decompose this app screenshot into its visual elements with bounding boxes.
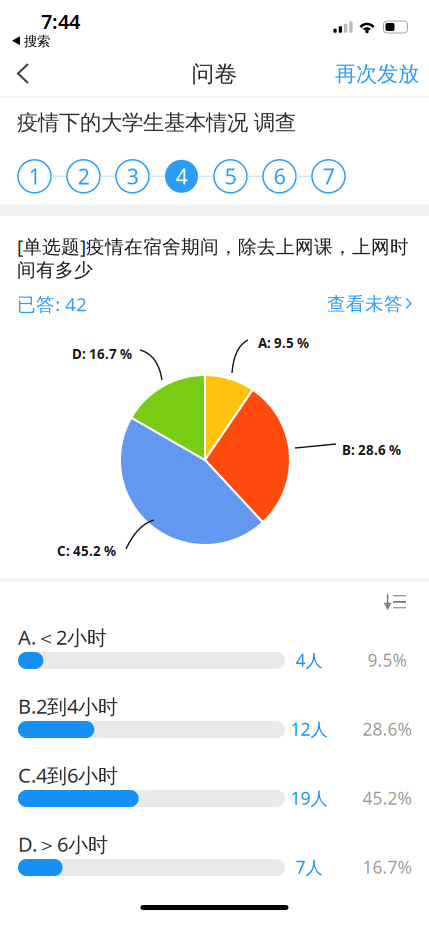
staticText: 6 bbox=[273, 162, 285, 190]
staticText: 9.5% bbox=[367, 648, 406, 671]
staticText: 7:44 bbox=[41, 8, 80, 35]
staticText: 已答: 42 bbox=[17, 291, 87, 316]
staticText: B: 28.6 % bbox=[342, 441, 401, 459]
staticText: 7人 bbox=[295, 855, 322, 878]
button[interactable]: 7 bbox=[312, 160, 345, 193]
staticText: 19人 bbox=[290, 786, 327, 809]
button[interactable]: 6 bbox=[263, 160, 296, 193]
staticText: 3 bbox=[126, 162, 138, 190]
button[interactable]: 2 bbox=[67, 160, 100, 193]
staticText: D: 16.7 % bbox=[72, 345, 132, 363]
staticText: 4人 bbox=[295, 648, 322, 671]
button[interactable]: 4 bbox=[165, 160, 198, 193]
staticText: D.＞6小时 bbox=[18, 831, 108, 857]
staticText: 28.6% bbox=[362, 717, 411, 740]
staticText: 1 bbox=[28, 162, 40, 190]
button[interactable]: 返回 bbox=[0, 52, 43, 96]
staticText: B.2到4小时 bbox=[18, 693, 118, 719]
button[interactable]: 查看未答 bbox=[327, 292, 412, 315]
staticText: 搜索 bbox=[24, 33, 50, 49]
staticText: A.＜2小时 bbox=[18, 624, 107, 650]
staticText: 45.2% bbox=[362, 786, 411, 809]
staticText: 12人 bbox=[290, 717, 327, 740]
staticText: 4 bbox=[175, 162, 187, 190]
staticText: C.4到6小时 bbox=[18, 762, 118, 788]
staticText: 问卷 bbox=[191, 60, 237, 88]
staticText: 疫情下的大学生基本情况 调查 bbox=[17, 110, 296, 136]
staticText: 再次发放 bbox=[335, 61, 419, 87]
staticText: C: 45.2 % bbox=[57, 542, 116, 560]
staticText: 16.7% bbox=[362, 855, 411, 878]
button[interactable]: 再次发放 bbox=[325, 49, 429, 99]
staticText: 5 bbox=[224, 162, 236, 190]
staticText: 查看未答 bbox=[327, 292, 403, 315]
staticText: A: 9.5 % bbox=[258, 334, 309, 352]
button[interactable]: 3 bbox=[116, 160, 149, 193]
staticText: 7 bbox=[322, 162, 334, 190]
button[interactable]: 排序 bbox=[385, 594, 406, 609]
button[interactable]: 5 bbox=[214, 160, 247, 193]
button[interactable]: 1 bbox=[18, 160, 51, 193]
staticText: [单选题]疫情在宿舍期间，除去上网课，上网时间有多少 bbox=[17, 234, 409, 281]
staticText: 2 bbox=[77, 162, 89, 190]
